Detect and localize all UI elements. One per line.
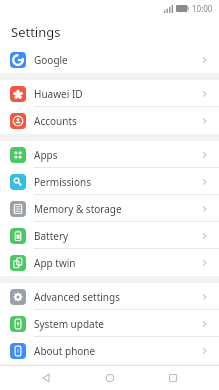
button[interactable]: Accounts — [0, 107, 219, 134]
button[interactable]: System update — [0, 310, 219, 337]
button[interactable]: Home — [93, 366, 127, 390]
button[interactable]: About phone — [0, 337, 219, 364]
staticText: Huawei ID — [34, 87, 83, 101]
staticText: Apps — [34, 148, 58, 162]
staticText: Battery — [34, 229, 69, 243]
staticText: 10:00 — [192, 3, 213, 14]
button[interactable]: Huawei ID — [0, 80, 219, 107]
button[interactable]: Recents — [156, 366, 190, 390]
button[interactable]: Memory & storage — [0, 195, 219, 222]
button[interactable]: Advanced settings — [0, 283, 219, 310]
staticText: System update — [34, 317, 104, 331]
button[interactable]: Back — [29, 366, 63, 390]
staticText: Permissions — [34, 175, 91, 189]
staticText: App twin — [34, 256, 76, 270]
button[interactable]: Battery — [0, 222, 219, 249]
button[interactable]: App twin — [0, 249, 219, 276]
button[interactable]: Apps — [0, 141, 219, 168]
staticText: About phone — [34, 344, 96, 358]
staticText: Accounts — [34, 114, 77, 128]
button[interactable]: Permissions — [0, 168, 219, 195]
staticText: Advanced settings — [34, 290, 120, 304]
staticText: Memory & storage — [34, 202, 122, 216]
button[interactable]: Google — [0, 46, 219, 73]
staticText: Google — [34, 53, 68, 67]
staticText: Settings — [11, 23, 61, 41]
